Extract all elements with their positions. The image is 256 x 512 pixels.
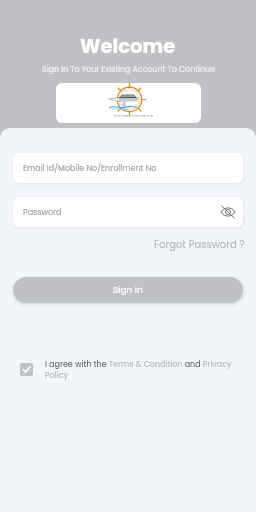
button[interactable]: Show password <box>220 204 236 220</box>
staticText: Sign in <box>113 284 143 297</box>
button[interactable]: Forgot Password ? <box>154 237 245 251</box>
button[interactable]: Email Id/Mobile No/Enrollment No <box>13 153 243 183</box>
staticText: Welcome <box>80 33 176 60</box>
button[interactable]: Password <box>13 197 243 227</box>
staticText: Password <box>23 207 62 218</box>
staticText: Sign In To Your Existing Account To Cont… <box>42 64 215 75</box>
staticText: I agree with the Terms & Condition and P… <box>45 359 242 381</box>
button[interactable]: I agree checkbox <box>20 363 33 376</box>
button[interactable]: Sign in <box>13 277 243 303</box>
staticText: Email Id/Mobile No/Enrollment No <box>23 163 157 174</box>
